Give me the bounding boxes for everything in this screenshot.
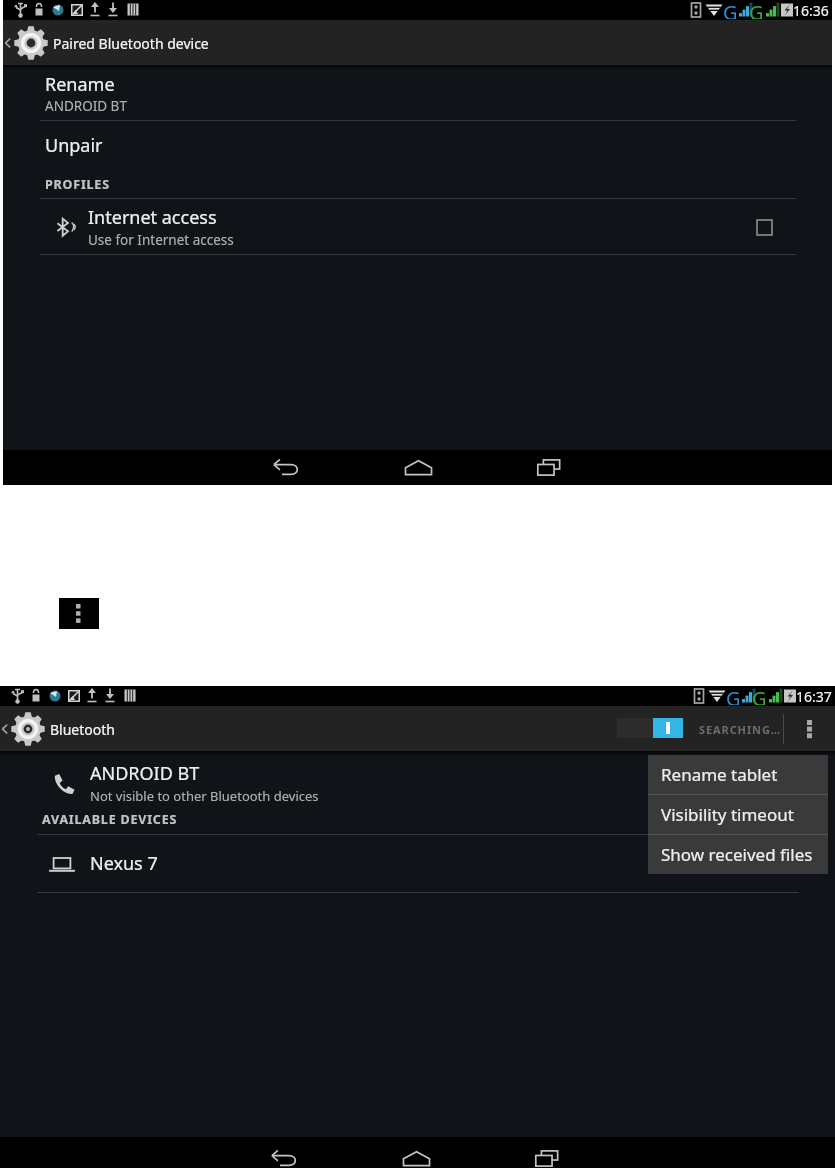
staticText: Paired Bluetooth device [53, 34, 209, 53]
staticText: PROFILES [45, 176, 110, 193]
button[interactable]: Show received files [648, 835, 828, 874]
button[interactable]: Home [374, 450, 462, 485]
staticText: Visibility timeout [661, 803, 794, 826]
staticText: AVAILABLE DEVICES [42, 811, 178, 828]
button[interactable]: Rename tablet [648, 755, 828, 794]
staticText: ANDROID BT [45, 97, 127, 115]
staticText: G [752, 685, 765, 705]
staticText: Rename [45, 72, 115, 97]
staticText: ANDROID BT [90, 761, 200, 786]
staticText: G [726, 685, 739, 705]
button[interactable]: Nexus 7 [0, 835, 835, 892]
staticText: Nexus 7 [90, 851, 158, 876]
staticText: Internet access [88, 205, 217, 230]
button[interactable]: Use for Internet access [749, 212, 779, 242]
staticText: Use for Internet access [88, 231, 234, 249]
button[interactable]: Recent apps [503, 1143, 591, 1168]
staticText: SEARCHING… [699, 722, 782, 737]
button[interactable]: Back [241, 450, 329, 485]
button[interactable]: Back [239, 1143, 327, 1168]
staticText: Rename tablet [661, 763, 778, 786]
staticText: Show received files [661, 843, 813, 866]
button[interactable]: Unpair [3, 121, 832, 170]
staticText: Not visible to other Bluetooth devices [90, 787, 319, 805]
button[interactable]: Recent apps [505, 450, 593, 485]
button[interactable]: ANDROID BT [0, 752, 835, 805]
staticText: 16:37 [796, 687, 832, 706]
staticText: Bluetooth [50, 720, 115, 739]
button[interactable]: More options [59, 598, 99, 629]
button[interactable]: Home [372, 1143, 460, 1168]
staticText: G [723, 0, 736, 19]
button[interactable]: Rename [3, 66, 832, 120]
staticText: 16:36 [793, 1, 829, 20]
button[interactable]: Bluetooth on [617, 718, 683, 738]
button[interactable]: Visibility timeout [648, 795, 828, 834]
button[interactable]: Navigate up [0, 711, 50, 747]
button[interactable]: More options [784, 706, 835, 752]
button[interactable]: Internet access [3, 199, 832, 254]
staticText: G [749, 0, 762, 19]
button[interactable]: Navigate up [3, 25, 53, 61]
staticText: Unpair [45, 133, 103, 158]
